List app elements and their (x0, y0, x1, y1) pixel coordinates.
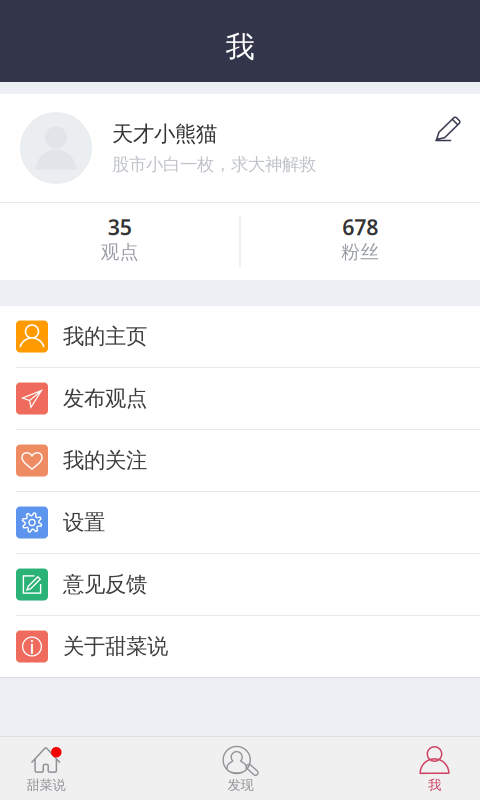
staticText: 关于甜菜说 (63, 633, 168, 660)
button[interactable]: 我的关注 (0, 430, 480, 491)
staticText: 意见反馈 (63, 571, 147, 598)
button[interactable]: 甜菜说 (0, 737, 92, 800)
staticText: 粉丝 (341, 240, 379, 263)
staticText: 35 (108, 213, 132, 241)
staticText: 我的关注 (63, 447, 147, 474)
button[interactable]: i (0, 616, 480, 677)
staticText: 天才小熊猫 (112, 121, 217, 147)
staticText: 我 (428, 777, 441, 793)
button[interactable]: 发现 (92, 737, 389, 800)
button[interactable]: Edit profile (435, 116, 480, 180)
button[interactable]: 设置 (0, 492, 480, 553)
staticText: 设置 (63, 509, 105, 536)
button[interactable]: 我的主页 (0, 306, 480, 367)
staticText: 我 (225, 29, 254, 65)
staticText: 观点 (101, 240, 139, 263)
staticText: 我的主页 (63, 323, 147, 350)
staticText: 发现 (227, 777, 253, 793)
button[interactable]: 意见反馈 (0, 554, 480, 615)
button[interactable]: 发布观点 (0, 368, 480, 429)
staticText: 股市小白一枚，求大神解救 (112, 154, 316, 175)
staticText: 发布观点 (63, 385, 147, 412)
staticText: i (29, 634, 34, 659)
staticText: 678 (342, 213, 378, 241)
button[interactable]: 我 (389, 737, 480, 800)
staticText: 甜菜说 (26, 777, 65, 793)
